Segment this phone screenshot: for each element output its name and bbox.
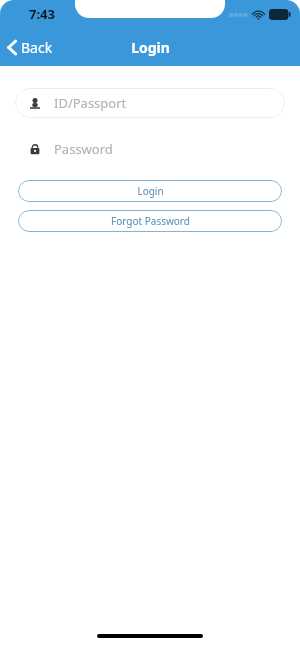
button[interactable]: Forgot Password <box>18 210 282 232</box>
staticText: Login <box>131 38 170 57</box>
button[interactable]: User <box>15 88 285 118</box>
button[interactable]: Login <box>18 180 282 202</box>
other: User <box>30 98 40 109</box>
staticText: 7:43 <box>29 5 55 23</box>
staticText: Login <box>137 184 164 198</box>
other: Password <box>30 143 40 155</box>
staticText: Forgot Password <box>111 214 190 228</box>
staticText: Back <box>21 38 53 57</box>
staticText: ID/Passport <box>54 94 127 112</box>
button[interactable]: Back <box>0 32 63 63</box>
staticText: Password <box>54 140 113 158</box>
button[interactable]: Password <box>15 134 285 164</box>
